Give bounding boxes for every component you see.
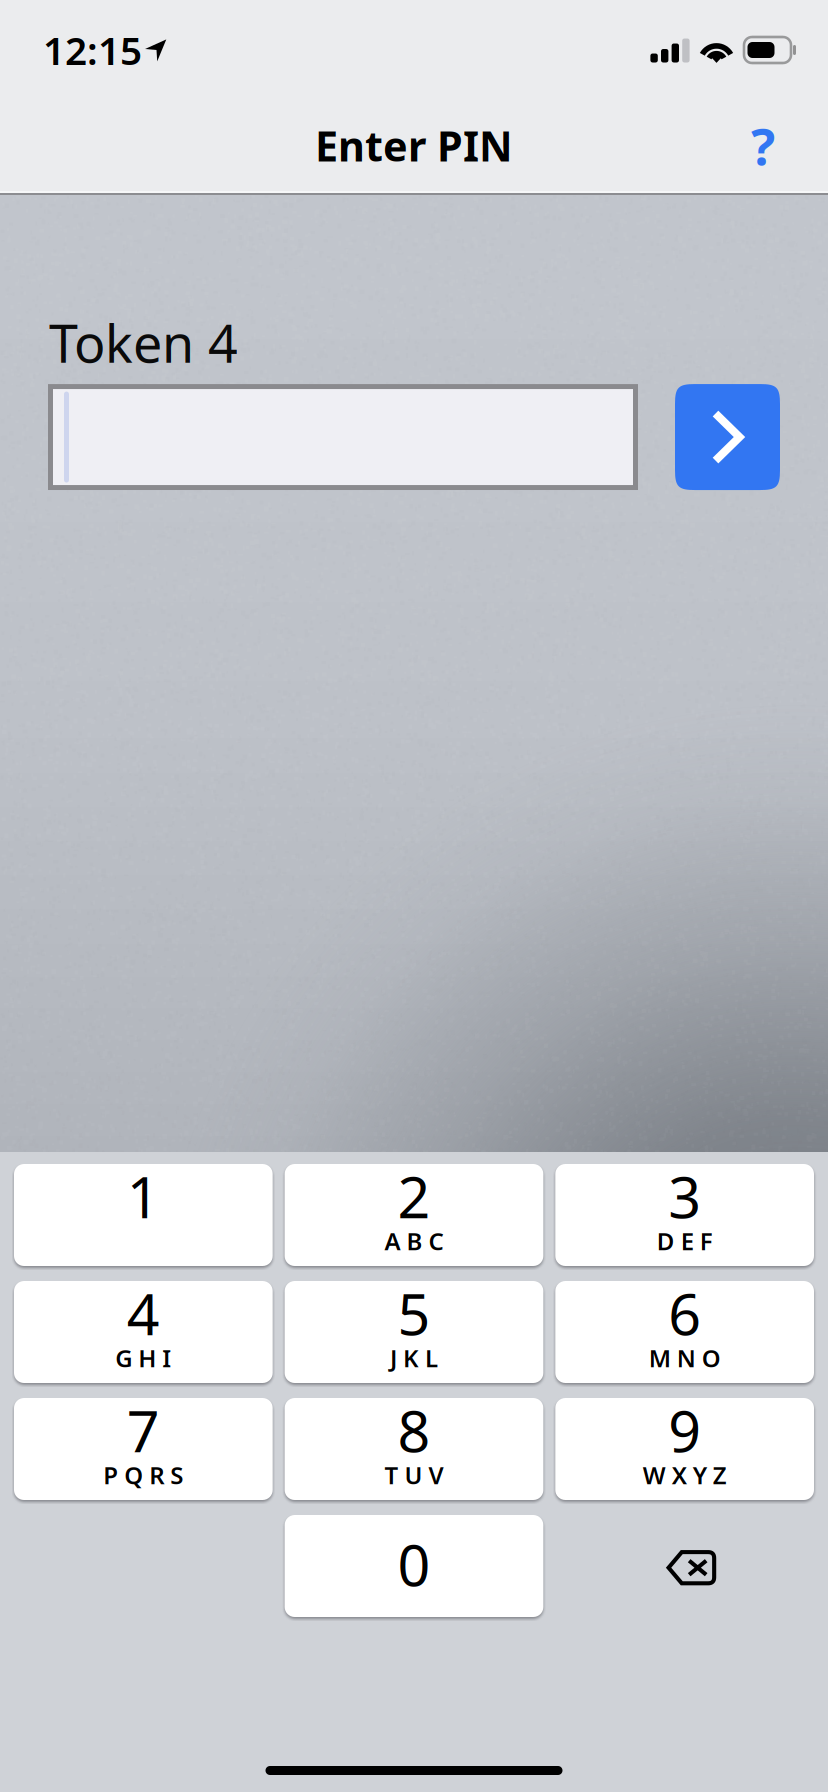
staticText: M N O — [649, 1342, 721, 1374]
staticText: G H I — [115, 1342, 171, 1374]
staticText: W X Y Z — [643, 1459, 727, 1491]
button[interactable]: 4 — [14, 1281, 273, 1383]
staticText: Token 4 — [49, 308, 238, 377]
staticText: 9 — [668, 1392, 701, 1468]
button[interactable]: 7 — [14, 1398, 273, 1500]
staticText: 4 — [127, 1275, 160, 1351]
staticText: 12:15 — [43, 24, 142, 76]
button[interactable]: Submit — [675, 384, 780, 490]
button[interactable]: Help — [726, 108, 800, 182]
button[interactable]: 0 — [285, 1515, 543, 1617]
staticText: 7 — [127, 1392, 160, 1468]
staticText: 1 — [127, 1158, 160, 1234]
button[interactable]: 9 — [555, 1398, 814, 1500]
staticText: Enter PIN — [315, 118, 513, 173]
button[interactable]: 6 — [555, 1281, 814, 1383]
staticText: J K L — [390, 1342, 438, 1374]
staticText: A B C — [384, 1225, 443, 1257]
staticText: 2 — [397, 1158, 430, 1234]
staticText: 6 — [668, 1275, 701, 1351]
staticText: P Q R S — [103, 1459, 183, 1491]
button[interactable]: 1 — [14, 1164, 273, 1266]
button[interactable]: 5 — [285, 1281, 543, 1383]
staticText: D E F — [657, 1225, 713, 1257]
button[interactable]: Delete — [555, 1515, 814, 1617]
button[interactable]: 3 — [555, 1164, 814, 1266]
staticText: ? — [751, 112, 775, 179]
staticText: 8 — [397, 1392, 430, 1468]
button[interactable]: 2 — [285, 1164, 543, 1266]
button[interactable]: 8 — [285, 1398, 543, 1500]
staticText: T U V — [384, 1459, 443, 1491]
staticText: 3 — [668, 1158, 701, 1234]
staticText: 0 — [397, 1526, 430, 1602]
staticText: 5 — [397, 1275, 430, 1351]
